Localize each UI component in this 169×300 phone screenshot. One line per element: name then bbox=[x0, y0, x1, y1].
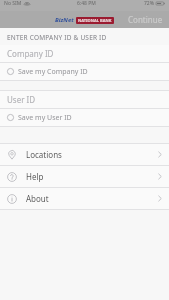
button[interactable]: Help bbox=[0, 166, 169, 187]
button[interactable]: About bbox=[0, 188, 169, 209]
staticText: Save my User ID bbox=[18, 113, 72, 123]
staticText: NATIONAL BANK bbox=[78, 18, 112, 23]
staticText: 6:48 PM bbox=[77, 0, 96, 7]
staticText: Company ID bbox=[7, 48, 54, 59]
staticText: About bbox=[26, 193, 49, 204]
staticText: Locations bbox=[26, 149, 62, 160]
button[interactable]: Save my User ID bbox=[0, 109, 169, 126]
button[interactable]: Save my Company ID bbox=[0, 63, 169, 80]
staticText: BizNet bbox=[55, 16, 74, 24]
staticText: 72% bbox=[144, 0, 154, 7]
staticText: ENTER COMPANY ID & USER ID bbox=[7, 33, 107, 42]
staticText: Help bbox=[26, 171, 44, 182]
button[interactable]: Company ID bbox=[0, 45, 169, 62]
staticText: No SIM bbox=[4, 0, 22, 7]
staticText: Save my Company ID bbox=[18, 67, 88, 77]
button[interactable]: Locations bbox=[0, 144, 169, 165]
staticText: User ID bbox=[7, 94, 36, 105]
button[interactable]: User ID bbox=[0, 91, 169, 108]
staticText: Continue bbox=[128, 14, 163, 25]
button[interactable]: Continue bbox=[122, 11, 169, 28]
